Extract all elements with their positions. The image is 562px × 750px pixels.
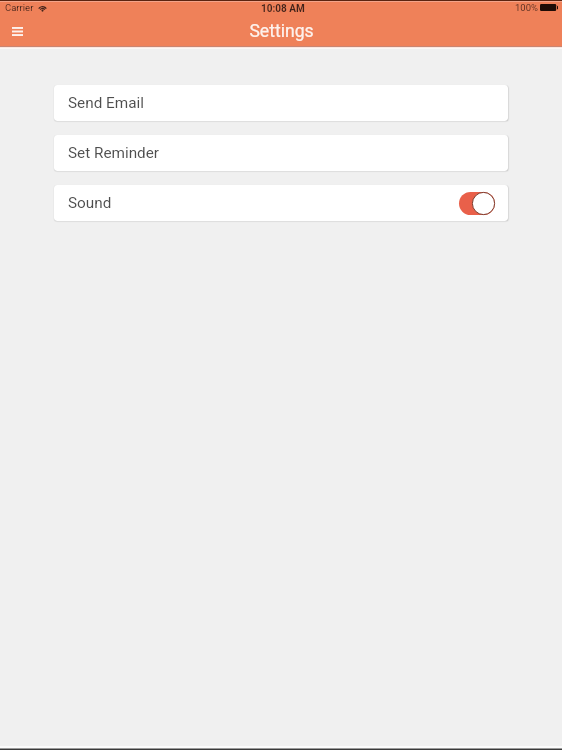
staticText: 10:08 AM	[261, 3, 305, 15]
staticText: Settings	[249, 21, 314, 42]
button[interactable]: Sound toggle	[459, 192, 495, 215]
staticText: Set Reminder	[68, 144, 160, 162]
staticText: Carrier	[5, 2, 34, 13]
button[interactable]: Sound	[54, 185, 508, 221]
staticText: 100%	[515, 2, 538, 13]
staticText: Sound	[68, 194, 112, 212]
button[interactable]: Menu	[0, 17, 34, 46]
button[interactable]: Set Reminder	[54, 135, 508, 171]
button[interactable]: Send Email	[54, 85, 508, 121]
staticText: Send Email	[68, 94, 144, 112]
